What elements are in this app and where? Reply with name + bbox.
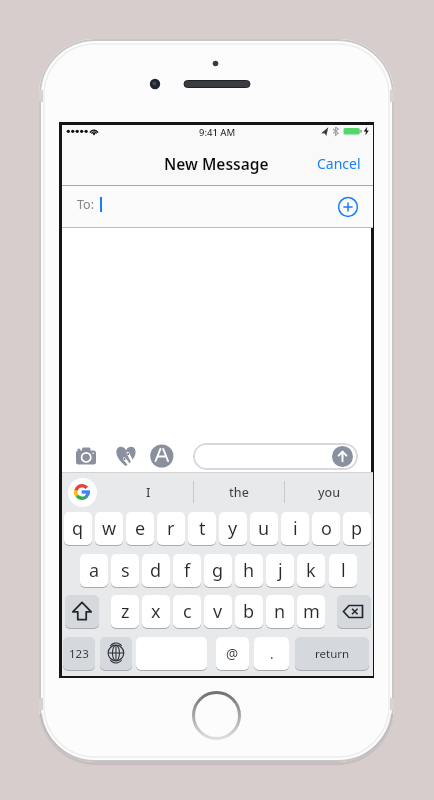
staticText: p <box>351 516 363 541</box>
button[interactable] <box>332 446 353 467</box>
button[interactable]: p <box>343 512 371 545</box>
button[interactable]: x <box>142 595 170 628</box>
button[interactable]: k <box>297 554 325 587</box>
staticText: v <box>213 599 223 624</box>
button[interactable] <box>193 692 240 739</box>
button[interactable]: o <box>312 512 340 545</box>
staticText: 123 <box>69 646 89 662</box>
button[interactable]: l <box>329 554 357 587</box>
button[interactable]: j <box>266 554 294 587</box>
staticText: o <box>321 516 332 541</box>
staticText: z <box>121 599 130 624</box>
staticText: I <box>146 484 151 501</box>
staticText: j <box>278 558 283 583</box>
staticText: To: <box>77 196 94 213</box>
button[interactable]: the <box>199 477 279 507</box>
button[interactable]: h <box>235 554 263 587</box>
button[interactable]: To: <box>77 184 137 224</box>
staticText: f <box>184 558 191 583</box>
button[interactable]: s <box>111 554 139 587</box>
staticText: d <box>150 558 162 583</box>
staticText: k <box>306 558 316 583</box>
button[interactable]: c <box>173 595 201 628</box>
staticText: b <box>243 599 255 624</box>
button[interactable]: 123 <box>63 637 95 670</box>
staticText: w <box>102 516 117 541</box>
staticText: Cancel <box>317 154 361 173</box>
button[interactable]: w <box>95 512 123 545</box>
staticText: r <box>167 516 175 541</box>
staticText: the <box>229 484 249 501</box>
button[interactable] <box>110 443 140 469</box>
button[interactable]: return <box>295 637 369 670</box>
button[interactable]: q <box>64 512 92 545</box>
button[interactable]: v <box>204 595 232 628</box>
staticText: s <box>121 558 130 583</box>
button[interactable]: you <box>289 477 369 507</box>
button[interactable]: g <box>204 554 232 587</box>
staticText: a <box>89 558 100 583</box>
button[interactable]: a <box>80 554 108 587</box>
staticText: u <box>258 516 270 541</box>
staticText: q <box>72 516 84 541</box>
button[interactable]: r <box>157 512 185 545</box>
button[interactable]: e <box>126 512 154 545</box>
button[interactable] <box>65 595 99 628</box>
staticText: @ <box>226 645 239 663</box>
staticText: c <box>183 599 192 624</box>
button[interactable]: z <box>111 595 139 628</box>
staticText: h <box>243 558 255 583</box>
button[interactable]: y <box>219 512 247 545</box>
button[interactable]: . <box>254 637 289 670</box>
button[interactable]: @ <box>216 637 249 670</box>
button[interactable] <box>148 443 176 469</box>
button[interactable] <box>72 443 100 469</box>
button[interactable]: d <box>142 554 170 587</box>
staticText: n <box>274 599 286 624</box>
button[interactable]: i <box>281 512 309 545</box>
button[interactable] <box>100 637 132 670</box>
staticText: you <box>318 484 341 501</box>
staticText: x <box>151 599 161 624</box>
staticText: return <box>315 646 350 662</box>
button[interactable] <box>68 478 97 507</box>
staticText: t <box>199 516 206 541</box>
staticText: y <box>228 516 238 541</box>
button[interactable]: u <box>250 512 278 545</box>
staticText: g <box>212 558 224 583</box>
staticText: . <box>270 645 274 663</box>
button[interactable]: n <box>266 595 294 628</box>
button[interactable] <box>136 637 207 670</box>
staticText: l <box>341 558 346 583</box>
button[interactable]: f <box>173 554 201 587</box>
staticText: e <box>135 516 146 541</box>
button[interactable] <box>338 197 358 217</box>
button[interactable]: I <box>108 477 188 507</box>
staticText: i <box>293 516 298 541</box>
button[interactable] <box>193 443 358 470</box>
button[interactable]: b <box>235 595 263 628</box>
button[interactable] <box>337 595 371 628</box>
button[interactable]: m <box>297 595 325 628</box>
staticText: 9:41 AM <box>199 126 236 139</box>
button[interactable]: Cancel <box>62 144 361 182</box>
button[interactable]: t <box>188 512 216 545</box>
staticText: m <box>303 599 320 624</box>
staticText: New Message <box>164 153 269 174</box>
